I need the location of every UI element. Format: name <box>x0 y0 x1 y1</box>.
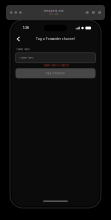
staticText: iPhone 15 Pro <box>44 10 64 13</box>
staticText: 393 × 852 <box>49 13 58 15</box>
staticText: Tag channel <box>45 72 65 75</box>
button[interactable]: Back <box>15 35 22 42</box>
staticText: 1:36 <box>23 26 29 30</box>
staticText: Channel name is required <box>42 64 68 67</box>
button[interactable]: Rotate device <box>86 11 89 14</box>
button[interactable]: Settings <box>98 11 101 14</box>
staticText: Tag a Forwarder channel <box>36 37 75 41</box>
button[interactable]: Tag channel <box>15 68 95 78</box>
button[interactable]: Take screenshot <box>92 11 95 14</box>
staticText: Channel name <box>15 48 29 51</box>
staticText: Channel name <box>19 56 33 59</box>
